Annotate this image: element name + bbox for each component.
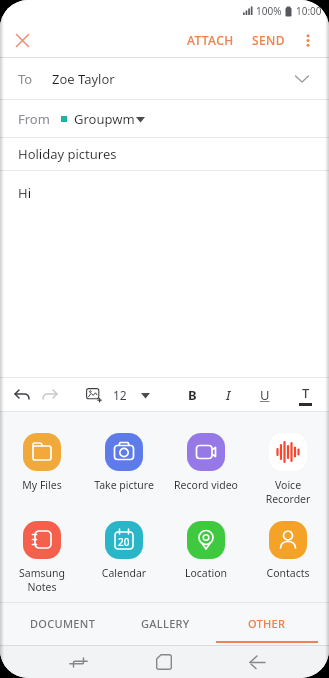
staticText: Hi (18, 184, 31, 202)
button[interactable]: B (180, 380, 204, 410)
button[interactable]: I (216, 380, 240, 410)
button[interactable]: Record video (165, 433, 247, 492)
staticText: 12 (113, 387, 127, 403)
staticText: Record video (166, 478, 246, 492)
button[interactable] (297, 29, 319, 51)
button[interactable]: OTHER (216, 602, 318, 645)
staticText: Zoe Taylor (52, 70, 115, 88)
button[interactable]: ATTACH (183, 26, 238, 54)
button[interactable]: 20 (83, 521, 165, 580)
staticText: Location (166, 566, 246, 580)
staticText: U (260, 386, 270, 404)
staticText: 20 (118, 535, 130, 549)
staticText: My Files (2, 478, 82, 492)
button[interactable] (237, 647, 277, 677)
staticText: I (226, 386, 231, 404)
staticText: Holiday pictures (18, 145, 117, 163)
button[interactable]: DOCUMENT (11, 602, 114, 645)
staticText: B (188, 386, 197, 404)
button[interactable]: My Files (1, 433, 83, 492)
staticText: OTHER (248, 616, 286, 631)
button[interactable]: Contacts (247, 521, 329, 580)
staticText: T (302, 384, 310, 402)
staticText: GALLERY (141, 616, 190, 631)
staticText: 10:00 (296, 4, 322, 18)
button[interactable] (84, 385, 104, 405)
button[interactable]: GALLERY (114, 602, 216, 645)
staticText: Take picture (84, 478, 164, 492)
button[interactable]: SEND (248, 26, 289, 54)
staticText: ATTACH (187, 32, 234, 48)
button[interactable] (7, 25, 37, 55)
button[interactable] (58, 647, 98, 677)
button[interactable]: T (292, 380, 318, 410)
staticText: Calendar (84, 566, 164, 580)
button[interactable]: Voice Recorder (247, 433, 329, 506)
staticText: Contacts (248, 566, 328, 580)
staticText: SEND (252, 32, 285, 48)
button[interactable]: Location (165, 521, 247, 580)
button[interactable]: Take picture (83, 433, 165, 492)
button[interactable]: Samsung Notes (1, 521, 83, 594)
staticText: Samsung Notes (2, 566, 82, 594)
button[interactable]: Holiday pictures (0, 138, 329, 170)
staticText: DOCUMENT (30, 616, 96, 631)
button[interactable] (40, 385, 60, 405)
button[interactable]: From (0, 100, 329, 137)
button[interactable] (12, 385, 32, 405)
staticText: 100% (256, 4, 282, 18)
button[interactable]: U (253, 380, 277, 410)
staticText: To (18, 70, 33, 88)
button[interactable] (144, 647, 184, 677)
button[interactable]: To (0, 58, 329, 99)
staticText: From (18, 110, 50, 128)
staticText: Voice Recorder (248, 478, 328, 506)
staticText: Groupwm (74, 110, 135, 128)
button[interactable]: 12 (113, 378, 159, 411)
